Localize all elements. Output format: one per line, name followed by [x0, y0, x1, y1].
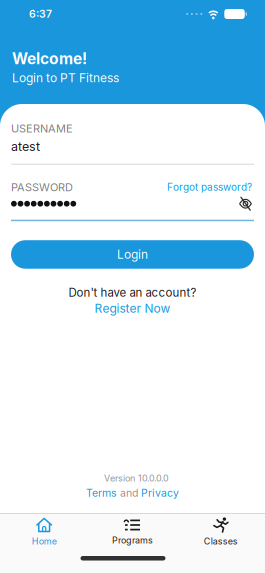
button[interactable]: Forgot password? [167, 181, 254, 193]
button[interactable]: Classes [177, 517, 265, 547]
staticText: PASSWORD [11, 181, 73, 194]
staticText: Version 10.0.0.0 [104, 473, 169, 484]
staticText: and [120, 487, 138, 499]
button[interactable]: Home [0, 517, 88, 547]
staticText: Register Now [94, 301, 170, 315]
button[interactable]: Programs [88, 518, 177, 546]
staticText: Terms [86, 487, 117, 499]
button[interactable]: Show password [239, 197, 252, 211]
staticText: Login [117, 247, 148, 262]
button[interactable]: Privacy [141, 487, 179, 499]
button[interactable]: Terms [86, 487, 117, 499]
staticText: Programs [112, 535, 153, 546]
staticText: Home [32, 536, 57, 547]
staticText: 6:37 [29, 8, 52, 20]
button[interactable]: Register Now [94, 301, 170, 315]
staticText: atest [11, 139, 40, 154]
staticText: Don't have an account? [68, 286, 196, 299]
staticText: Forgot password? [167, 181, 252, 193]
staticText: Welcome! [12, 50, 87, 68]
staticText: USERNAME [11, 122, 73, 135]
button[interactable]: Login [11, 240, 254, 269]
staticText: Classes [204, 536, 238, 547]
staticText: Login to PT Fitness [12, 71, 119, 85]
staticText: Privacy [141, 487, 179, 499]
